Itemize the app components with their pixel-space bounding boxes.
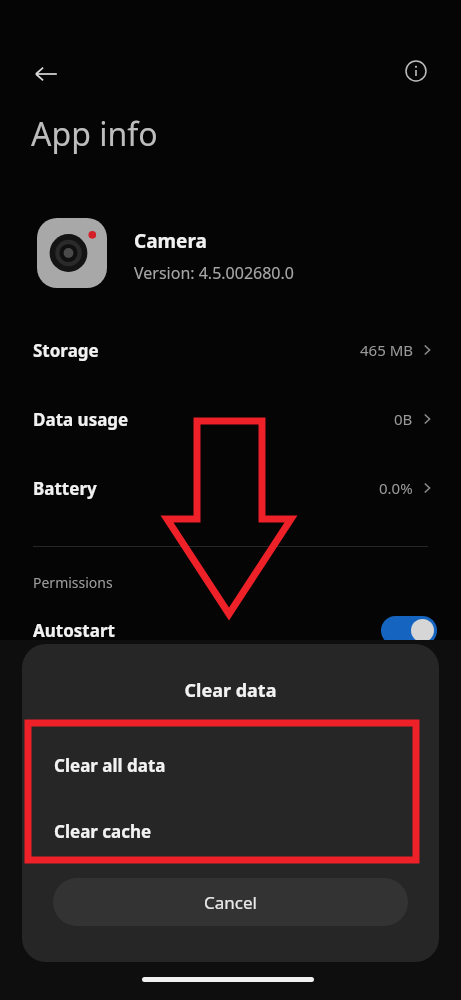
staticText: Clear all data	[54, 754, 166, 777]
button[interactable]: Back	[20, 48, 72, 100]
button[interactable]: Clear all data	[22, 732, 439, 798]
staticText: Clear cache	[54, 820, 152, 843]
button[interactable]: Cancel	[53, 878, 408, 926]
staticText: Version: 4.5.002680.0	[134, 262, 294, 284]
button[interactable]: About app	[391, 46, 441, 96]
staticText: 465 MB	[360, 340, 413, 360]
staticText: 0B	[394, 409, 413, 429]
staticText: Data usage	[33, 408, 129, 431]
staticText: Camera	[134, 228, 207, 254]
staticText: Clear data	[22, 678, 439, 703]
button[interactable]: Autostart	[0, 608, 461, 652]
staticText: Autostart	[33, 619, 115, 642]
staticText: Battery	[33, 477, 97, 500]
staticText: Permissions	[33, 573, 113, 592]
staticText: 0.0%	[379, 478, 413, 498]
staticText: App info	[31, 112, 158, 156]
button[interactable]: Storage	[0, 325, 461, 375]
button[interactable]: Clear cache	[22, 798, 439, 864]
button[interactable]: Data usage	[0, 394, 461, 444]
staticText: Storage	[33, 339, 99, 362]
staticText: Cancel	[204, 891, 257, 914]
button[interactable]: Battery	[0, 463, 461, 513]
